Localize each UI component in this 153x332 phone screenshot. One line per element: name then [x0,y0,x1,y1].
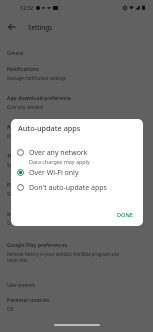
staticText: Show content ratings [7,191,51,197]
staticText: Over any network [29,148,88,158]
button[interactable]: App download preference [0,94,153,110]
staticText: Settings [28,23,53,31]
staticText: Off [7,220,14,226]
staticText: 12:32 [20,4,34,11]
staticText: Remove history in your wishlist, the Bet… [7,251,119,257]
button[interactable]: Google Play preferences [0,241,153,263]
button[interactable]: Over Wi-Fi only [11,168,143,178]
staticText: Parent guide ratings [7,181,58,188]
staticText: Google Play preferences [7,241,68,248]
staticText: Auto-update apps [7,123,52,130]
button[interactable]: Notifications [0,65,153,81]
staticText: Internal app sharing [7,210,58,217]
staticText: Off [7,306,14,312]
staticText: General [7,50,24,56]
button[interactable]: Back [4,19,20,35]
staticText: Notifications [7,65,39,72]
button[interactable]: DONE [111,207,139,223]
staticText: Over Wi-Fi only [29,168,79,178]
button[interactable]: Theme [0,152,153,168]
button[interactable]: Parent guide ratings [0,181,153,197]
button[interactable]: Over any network [11,148,143,165]
button[interactable]: Parental controls [0,296,153,312]
button[interactable]: Internal app sharing [0,210,153,226]
staticText: Parental controls [7,296,50,303]
staticText: Data charges may apply [29,158,90,165]
staticText: other lists [7,257,28,263]
button[interactable]: Auto-update apps [0,123,153,139]
staticText: User controls [7,282,35,288]
staticText: DONE [117,211,133,219]
staticText: Over Wi-Fi only [7,133,39,139]
staticText: Theme [7,152,25,159]
staticText: App download preference [7,94,71,101]
staticText: Don't auto-update apps [29,183,107,193]
staticText: Auto-update apps [18,123,81,133]
staticText: System default [7,162,38,168]
button[interactable]: Don't auto-update apps [11,183,143,193]
staticText: Manage notification settings [7,75,66,81]
staticText: Over any network [7,104,44,110]
